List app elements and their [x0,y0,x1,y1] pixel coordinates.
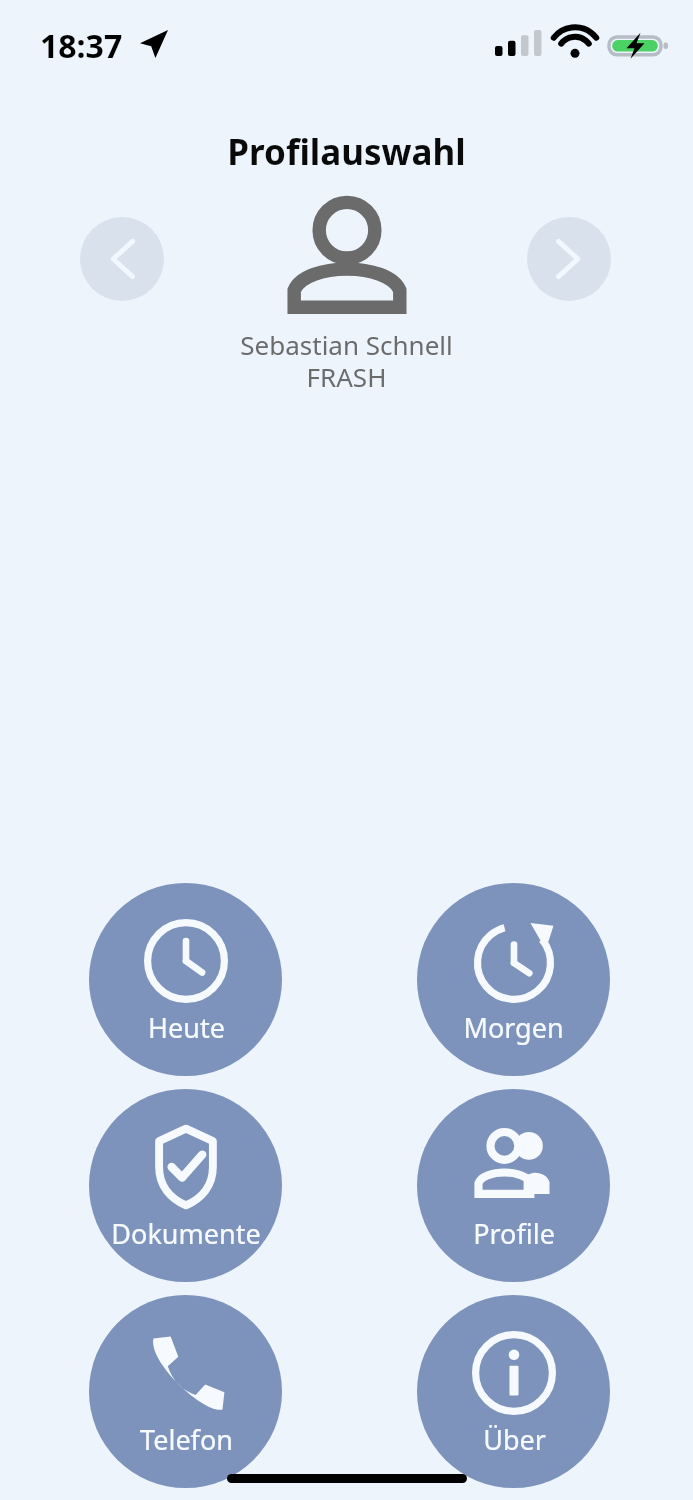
staticText: 18:37 [40,24,123,68]
button[interactable]: Über [417,1295,610,1488]
button[interactable]: Profile [417,1089,610,1282]
staticText: Über [483,1421,546,1458]
button[interactable]: Nächstes Profil [527,217,611,301]
button[interactable]: Dokumente [89,1089,282,1282]
staticText: Dokumente [111,1215,261,1252]
staticText: Sebastian Schnell FRASH [240,327,453,395]
staticText: Heute [148,1009,225,1046]
button[interactable]: Telefon [89,1295,282,1488]
staticText: Morgen [463,1009,564,1046]
button[interactable]: Heute [89,883,282,1076]
button[interactable]: Vorheriges Profil [80,217,164,301]
staticText: Telefon [140,1421,233,1458]
staticText: Profile [473,1215,555,1252]
button[interactable]: Morgen [417,883,610,1076]
staticText: Profilauswahl [0,128,693,176]
